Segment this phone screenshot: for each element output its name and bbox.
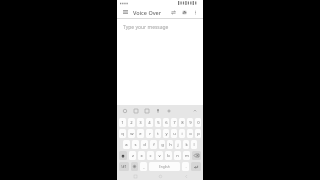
staticText: g bbox=[161, 142, 164, 148]
button[interactable]: y bbox=[163, 129, 169, 138]
staticText: 1 bbox=[121, 120, 124, 126]
button[interactable]: k bbox=[183, 140, 189, 149]
button[interactable]: Menu bbox=[120, 7, 130, 17]
staticText: d bbox=[143, 142, 146, 148]
button[interactable]: 6 bbox=[163, 118, 169, 127]
button[interactable]: b bbox=[165, 151, 172, 160]
staticText: s bbox=[134, 142, 137, 148]
staticText: 3 bbox=[139, 120, 142, 126]
button[interactable]: Space bbox=[149, 162, 180, 171]
button[interactable]: o bbox=[187, 129, 193, 138]
button[interactable]: Switch language bbox=[169, 8, 178, 17]
button[interactable]: Emoji bbox=[121, 107, 129, 115]
button[interactable]: 8 bbox=[179, 118, 185, 127]
staticText: x bbox=[140, 153, 143, 159]
button[interactable]: u bbox=[171, 129, 177, 138]
staticText: 4 bbox=[148, 120, 151, 126]
staticText: h bbox=[169, 142, 172, 148]
button[interactable]: Expand toolbar bbox=[191, 107, 199, 115]
button[interactable]: Home bbox=[152, 172, 168, 180]
button[interactable]: Voice input bbox=[154, 107, 162, 115]
staticText: e bbox=[139, 131, 142, 137]
staticText: 2 bbox=[130, 120, 133, 126]
button[interactable]: 1 bbox=[119, 118, 126, 127]
staticText: i bbox=[181, 131, 183, 137]
button[interactable]: Settings bbox=[165, 107, 173, 115]
button[interactable]: Enter bbox=[191, 162, 201, 171]
staticText: q bbox=[121, 131, 124, 137]
staticText: 6 bbox=[165, 120, 168, 126]
button[interactable]: More options bbox=[191, 8, 200, 17]
staticText: b bbox=[167, 153, 170, 159]
staticText: z bbox=[132, 153, 134, 159]
button[interactable]: !#1 bbox=[119, 162, 129, 171]
button[interactable]: z bbox=[129, 151, 136, 160]
staticText: !#1 bbox=[121, 164, 127, 169]
staticText: m bbox=[185, 153, 189, 159]
button[interactable]: 0 bbox=[195, 118, 201, 127]
button[interactable]: e bbox=[137, 129, 144, 138]
button[interactable]: v bbox=[156, 151, 163, 160]
button[interactable]: i bbox=[179, 129, 185, 138]
staticText: j bbox=[177, 142, 179, 148]
staticText: Voice Over bbox=[133, 9, 162, 16]
staticText: f bbox=[153, 142, 155, 148]
button[interactable]: . bbox=[182, 162, 189, 171]
staticText: a bbox=[125, 142, 128, 148]
staticText: n bbox=[176, 153, 179, 159]
button[interactable]: 4 bbox=[146, 118, 153, 127]
button[interactable]: 2 bbox=[128, 118, 135, 127]
staticText: English bbox=[159, 165, 170, 169]
button[interactable]: s bbox=[132, 140, 139, 149]
button[interactable]: j bbox=[175, 140, 181, 149]
staticText: . bbox=[185, 164, 187, 170]
button[interactable]: c bbox=[147, 151, 154, 160]
staticText: l bbox=[193, 142, 195, 148]
button[interactable]: Adjust settings bbox=[180, 8, 189, 17]
staticText: 9 bbox=[189, 120, 192, 126]
staticText: t bbox=[157, 131, 159, 137]
staticText: v bbox=[158, 153, 161, 159]
button[interactable]: w bbox=[128, 129, 135, 138]
button[interactable]: t bbox=[155, 129, 161, 138]
button[interactable]: Shift bbox=[119, 151, 127, 160]
button[interactable]: m bbox=[183, 151, 190, 160]
button[interactable]: x bbox=[138, 151, 145, 160]
staticText: r bbox=[149, 131, 151, 137]
staticText: k bbox=[185, 142, 188, 148]
button[interactable]: , bbox=[140, 162, 147, 171]
staticText: 0 bbox=[197, 120, 200, 126]
button[interactable]: l bbox=[191, 140, 197, 149]
button[interactable]: d bbox=[141, 140, 148, 149]
button[interactable]: Sticker bbox=[132, 107, 140, 115]
staticText: 7 bbox=[173, 120, 176, 126]
staticText: o bbox=[189, 131, 192, 137]
staticText: 8 bbox=[181, 120, 184, 126]
button[interactable]: q bbox=[119, 129, 126, 138]
button[interactable]: 5 bbox=[155, 118, 161, 127]
staticText: w bbox=[130, 131, 134, 137]
button[interactable]: r bbox=[146, 129, 153, 138]
staticText: c bbox=[149, 153, 152, 159]
button[interactable]: n bbox=[174, 151, 181, 160]
staticText: y bbox=[165, 131, 168, 137]
button[interactable]: h bbox=[167, 140, 173, 149]
button[interactable]: f bbox=[150, 140, 157, 149]
staticText: p bbox=[197, 131, 200, 137]
button[interactable]: 3 bbox=[137, 118, 144, 127]
staticText: Type your message bbox=[123, 24, 169, 31]
staticText: , bbox=[143, 164, 145, 170]
staticText: 5 bbox=[157, 120, 160, 126]
button[interactable]: Keyboard settings bbox=[131, 162, 138, 171]
button[interactable]: GIF bbox=[143, 107, 151, 115]
button[interactable]: p bbox=[195, 129, 201, 138]
button[interactable]: Type your message bbox=[117, 19, 203, 105]
button[interactable]: Recents bbox=[127, 172, 143, 180]
button[interactable]: 9 bbox=[187, 118, 193, 127]
staticText: u bbox=[173, 131, 176, 137]
button[interactable]: g bbox=[159, 140, 165, 149]
button[interactable]: a bbox=[123, 140, 130, 149]
button[interactable]: 7 bbox=[171, 118, 177, 127]
button[interactable]: Backspace bbox=[192, 151, 201, 160]
